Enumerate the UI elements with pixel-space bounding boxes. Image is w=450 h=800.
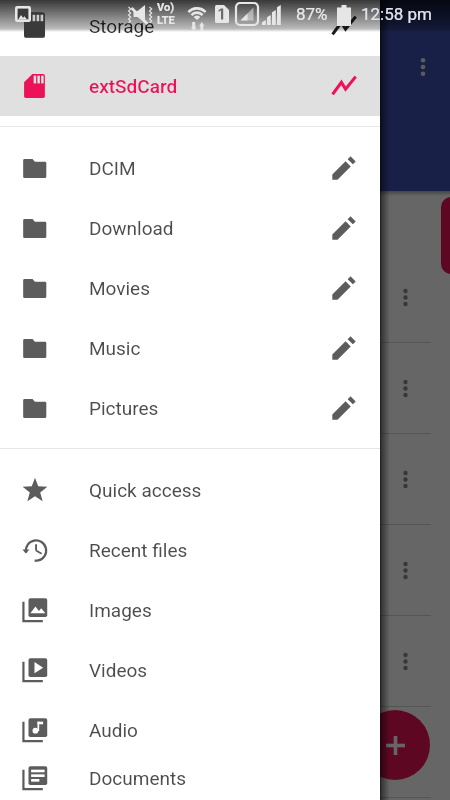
button[interactable]: Item options: [390, 646, 420, 676]
staticText: Images: [89, 599, 152, 621]
staticText: Quick access: [89, 479, 202, 501]
button[interactable]: Rename Movies: [318, 258, 370, 318]
button[interactable]: Audio: [0, 700, 380, 760]
staticText: Music: [89, 337, 141, 359]
button[interactable]: Pictures: [0, 378, 380, 438]
staticText: Download: [89, 217, 174, 239]
staticText: extSdCard: [89, 75, 178, 97]
staticText: DCIM: [89, 157, 136, 179]
staticText: Videos: [89, 659, 148, 681]
button[interactable]: Images: [0, 580, 380, 640]
staticText: Audio: [89, 719, 138, 741]
button[interactable]: Item options: [390, 555, 420, 585]
staticText: 87%: [296, 4, 328, 24]
button[interactable]: Documents: [0, 760, 380, 796]
staticText: Storage: [89, 15, 155, 37]
button[interactable]: More options: [406, 50, 440, 84]
button[interactable]: Item options: [390, 464, 420, 494]
button[interactable]: Storage: [0, 0, 380, 56]
button[interactable]: Add: [360, 710, 430, 780]
button[interactable]: Storage analysis: [318, 0, 370, 56]
button[interactable]: Music: [0, 318, 380, 378]
staticText: Documents: [89, 767, 186, 789]
staticText: 12:58 pm: [361, 4, 433, 24]
button[interactable]: Quick access: [0, 460, 380, 520]
staticText: LTE: [157, 14, 175, 27]
staticText: Vo): [157, 1, 175, 14]
button[interactable]: Movies: [0, 258, 380, 318]
button[interactable]: Item options: [390, 282, 420, 312]
button[interactable]: Item options: [390, 737, 420, 767]
button[interactable]: Videos: [0, 640, 380, 700]
staticText: Pictures: [89, 397, 159, 419]
button[interactable]: extSdCard: [0, 56, 380, 116]
button[interactable]: Rename Pictures: [318, 378, 370, 438]
staticText: Recent files: [89, 539, 188, 561]
button[interactable]: Rename Music: [318, 318, 370, 378]
button[interactable]: Item options: [390, 373, 420, 403]
button[interactable]: DCIM: [0, 138, 380, 198]
button[interactable]: Rename DCIM: [318, 138, 370, 198]
button[interactable]: Recent files: [0, 520, 380, 580]
staticText: Movies: [89, 277, 150, 299]
button[interactable]: Download: [0, 198, 380, 258]
button[interactable]: Rename Download: [318, 198, 370, 258]
button[interactable]: Storage analysis: [318, 56, 370, 116]
